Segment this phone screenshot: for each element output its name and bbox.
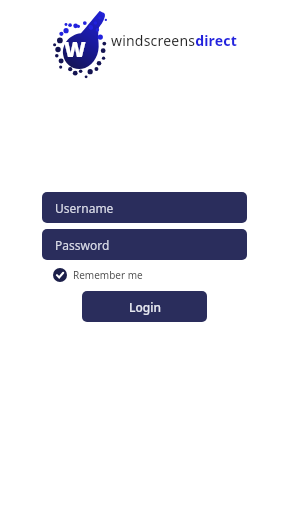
other: windscreensdirect logo	[58, 9, 110, 73]
staticText: Username	[55, 200, 114, 216]
staticText: Login	[129, 299, 161, 315]
staticText: Password	[55, 237, 110, 253]
staticText: W	[64, 35, 86, 64]
button[interactable]: Password	[42, 229, 247, 260]
button[interactable]: Remember me	[51, 265, 145, 285]
staticText: Remember me	[73, 268, 143, 282]
button[interactable]: Login	[82, 291, 207, 322]
button[interactable]: Username	[42, 192, 247, 223]
staticText: windscreensdirect	[111, 31, 238, 50]
